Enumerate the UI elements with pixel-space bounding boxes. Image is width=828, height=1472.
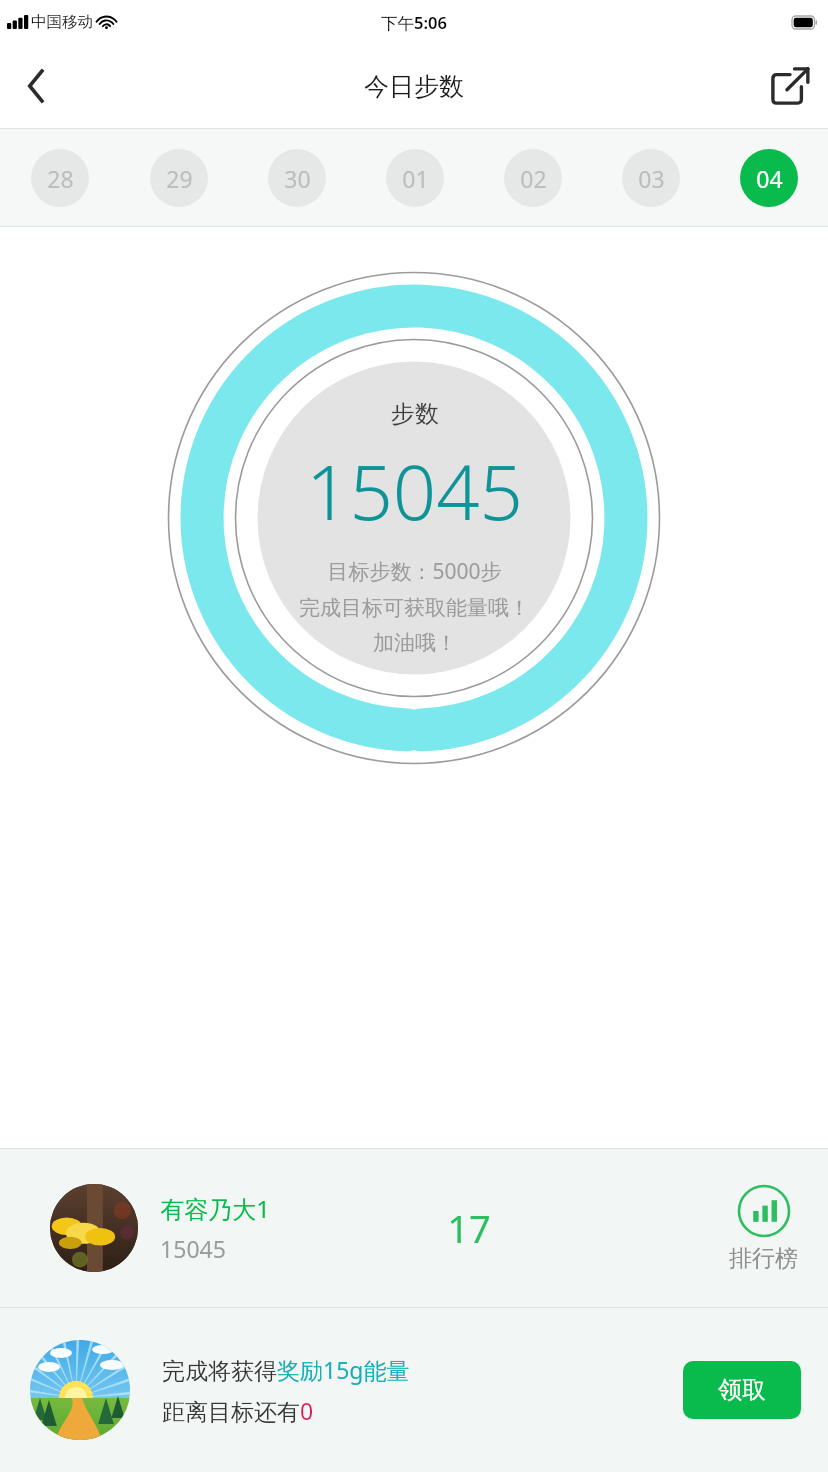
button[interactable]: 领取 [683,1361,801,1419]
staticText: 领取 [718,1375,766,1405]
button[interactable]: 03 [592,129,710,226]
button[interactable]: 28 [0,129,119,226]
staticText: 下午5:06 [381,11,447,34]
staticText: 30 [284,163,311,194]
staticText: 加油哦！ [373,630,457,656]
staticText: 排行榜 [729,1244,798,1273]
staticText: 完成目标可获取能量哦！ [299,595,530,621]
staticText: 距离目标还有0 [162,1395,314,1426]
staticText: 04 [756,163,783,194]
staticText: 15045 [306,439,523,543]
staticText: 17 [447,1202,491,1254]
staticText: 28 [47,163,74,194]
staticText: 03 [638,163,665,194]
staticText: 01 [402,163,429,194]
staticText: 29 [166,163,193,194]
staticText: 有容乃大1 [160,1192,270,1225]
staticText: 02 [520,163,547,194]
staticText: 目标步数：5000步 [327,557,502,586]
button[interactable]: 02 [474,129,592,226]
staticText: 15045 [160,1233,226,1264]
button[interactable]: 01 [356,129,474,226]
button[interactable]: Share [752,48,828,124]
button[interactable]: Back [0,50,72,122]
staticText: 步数 [391,399,439,429]
staticText: 今日步数 [364,71,464,102]
staticText: 中国移动 [31,12,93,32]
button[interactable]: 有容乃大1 [0,1149,828,1307]
button[interactable]: 排行榜 [698,1149,828,1307]
staticText: 完成将获得奖励15g能量 [162,1354,410,1385]
button[interactable]: 29 [119,129,238,226]
button[interactable]: 04 [710,129,828,226]
button[interactable]: 30 [238,129,356,226]
